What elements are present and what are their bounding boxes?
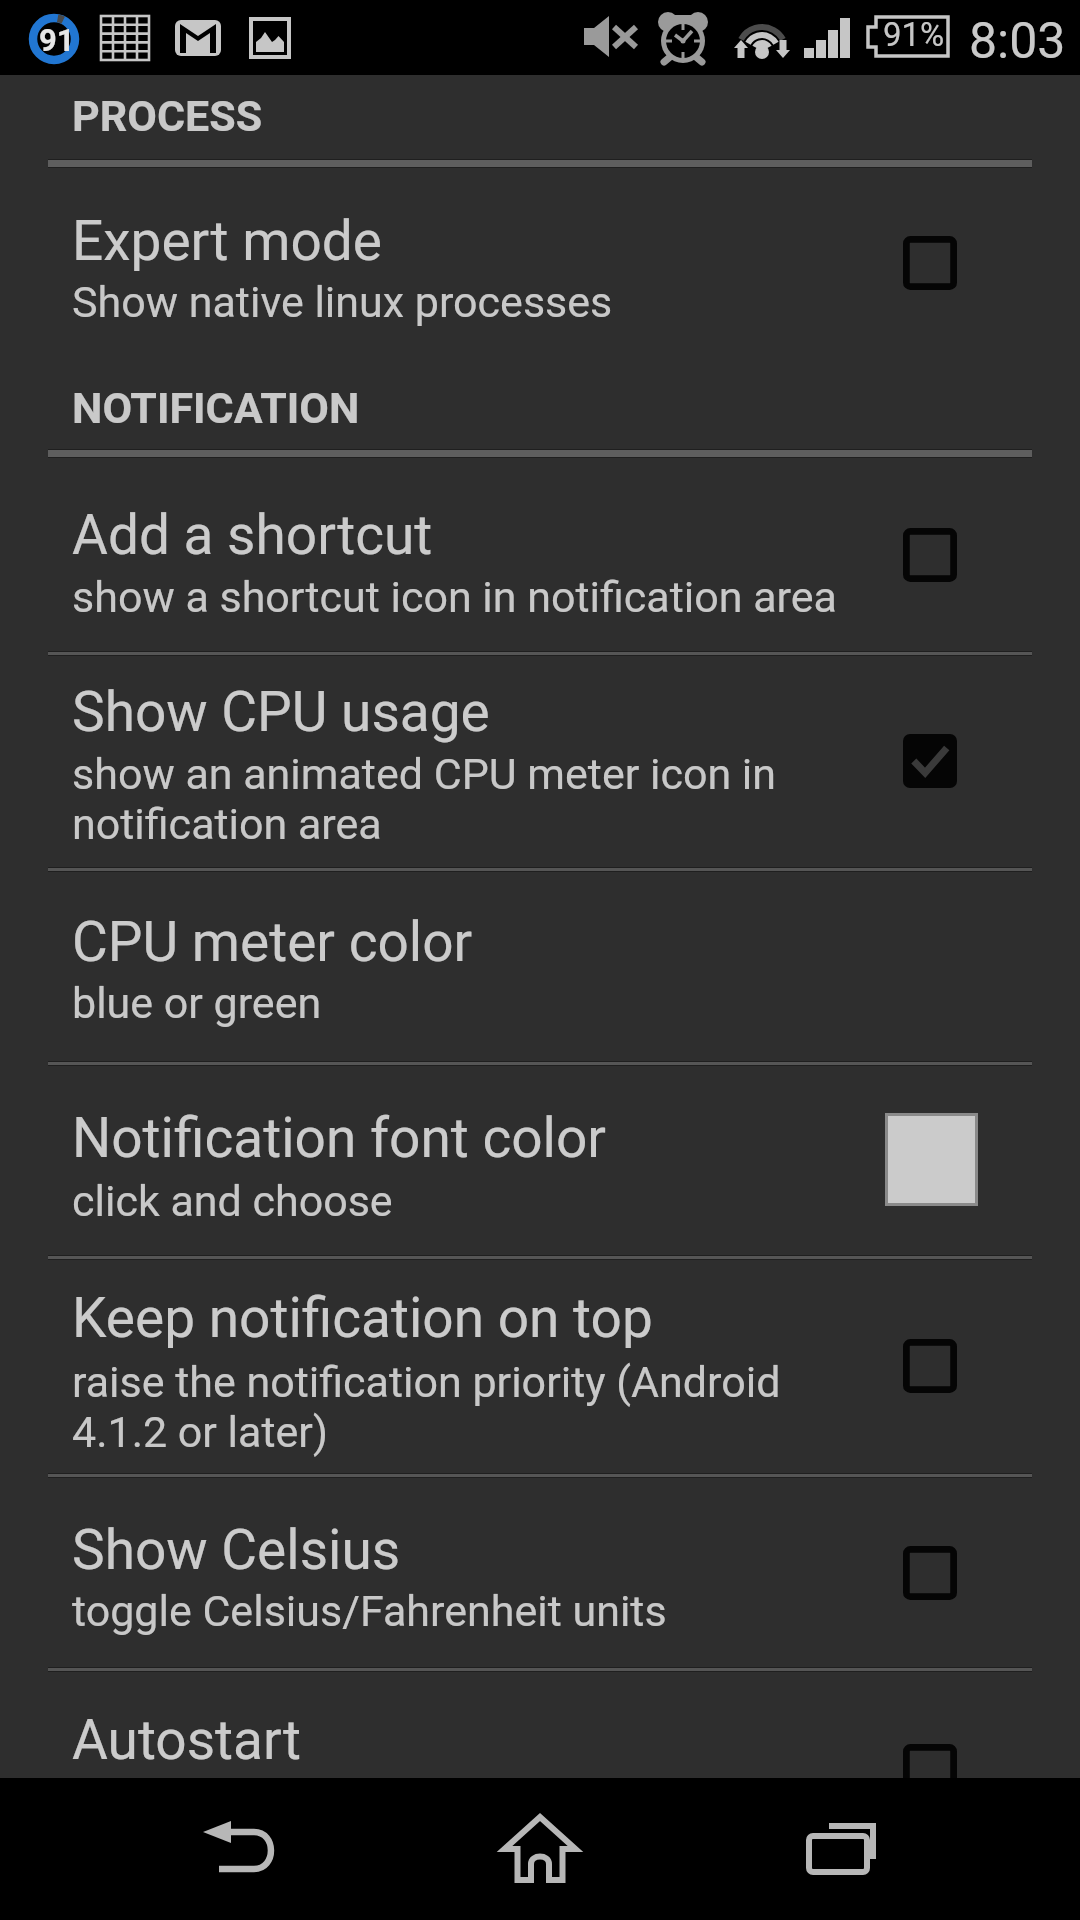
staticText: Autostart	[72, 1708, 972, 1772]
button[interactable]: Home	[420, 1778, 660, 1920]
staticText: Keep notification on top	[72, 1286, 972, 1350]
staticText: 91	[39, 22, 75, 58]
staticText: blue or green	[72, 978, 972, 1028]
button[interactable]: Notification font color	[0, 1065, 1080, 1256]
staticText: Notification font color	[72, 1106, 972, 1170]
staticText: Show Celsius	[72, 1518, 972, 1582]
staticText: Show CPU usage	[72, 680, 972, 744]
staticText: NOTIFICATION	[72, 383, 972, 433]
staticText: Expert mode	[72, 209, 972, 273]
staticText: raise the notification priority (Android…	[72, 1357, 832, 1457]
button[interactable]: Show CPU usage	[0, 654, 1080, 868]
staticText: click and choose	[72, 1176, 972, 1226]
button[interactable]: Expert mode	[0, 167, 1080, 360]
button[interactable]: CPU meter color	[0, 871, 1080, 1062]
staticText: show an animated CPU meter icon in notif…	[72, 749, 832, 849]
staticText: 91%	[883, 15, 945, 54]
button[interactable]: Keep notification on top	[0, 1259, 1080, 1474]
button[interactable]: Back	[120, 1778, 360, 1920]
staticText: Add a shortcut	[72, 503, 972, 567]
button[interactable]: Show Celsius	[0, 1477, 1080, 1668]
staticText: PROCESS	[72, 91, 972, 141]
button[interactable]: Autostart	[0, 1671, 1080, 1790]
staticText: show a shortcut icon in notification are…	[72, 572, 972, 622]
staticText: toggle Celsius/Fahrenheit units	[72, 1586, 972, 1636]
staticText: Show native linux processes	[72, 277, 972, 327]
button[interactable]: Add a shortcut	[0, 458, 1080, 651]
staticText: 8:03	[969, 12, 1066, 71]
button[interactable]: Recent apps	[720, 1778, 960, 1920]
staticText: CPU meter color	[72, 910, 972, 974]
